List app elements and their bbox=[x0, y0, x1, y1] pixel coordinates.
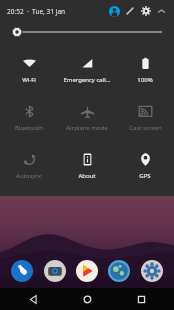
staticText: Autosync bbox=[16, 172, 42, 180]
staticText: Wi-Fi bbox=[22, 76, 36, 84]
button[interactable]: Settings bbox=[138, 3, 154, 19]
button[interactable]: Emergency call… bbox=[58, 46, 116, 94]
staticText: Airplane mode bbox=[66, 124, 108, 132]
button[interactable]: Camera bbox=[40, 256, 70, 286]
staticText: About bbox=[78, 172, 96, 180]
button[interactable]: 100% bbox=[116, 46, 174, 94]
button[interactable]: Recents bbox=[120, 288, 162, 310]
button[interactable]: Autosync bbox=[0, 142, 58, 190]
staticText: Emergency call… bbox=[63, 76, 111, 84]
button[interactable]: Play Store bbox=[72, 256, 102, 286]
button[interactable]: Airplane mode bbox=[58, 94, 116, 142]
button[interactable]: About bbox=[58, 142, 116, 190]
button[interactable]: Cast screen bbox=[116, 94, 174, 142]
button[interactable]: Settings bbox=[137, 256, 167, 286]
staticText: 100% bbox=[137, 76, 153, 84]
button[interactable]: User bbox=[106, 3, 122, 19]
staticText: GPS bbox=[139, 172, 151, 180]
button[interactable]: Edit bbox=[122, 3, 138, 19]
button[interactable]: Phone bbox=[7, 256, 37, 286]
button[interactable]: Home bbox=[66, 288, 108, 310]
button[interactable]: Back bbox=[12, 288, 54, 310]
staticText: 20:52 · Tue, 31 Jan bbox=[7, 7, 66, 16]
button[interactable]: Bluetooth bbox=[0, 94, 58, 142]
staticText: Cast screen bbox=[129, 124, 162, 132]
button[interactable]: Brightness bbox=[10, 22, 164, 42]
staticText: Bluetooth bbox=[15, 124, 43, 132]
button[interactable]: Wi-Fi bbox=[0, 46, 58, 94]
button[interactable]: Browser bbox=[104, 256, 134, 286]
button[interactable]: Collapse bbox=[154, 4, 169, 19]
button[interactable]: GPS bbox=[116, 142, 174, 190]
